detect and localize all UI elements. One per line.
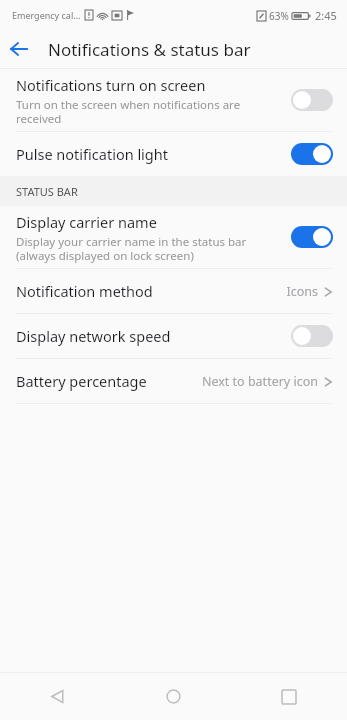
- button[interactable]: Notification method: [0, 269, 347, 313]
- staticText: 2:45: [315, 8, 337, 23]
- staticText: Notification method: [16, 281, 153, 301]
- staticText: Display your carrier name in the status …: [16, 234, 247, 263]
- staticText: Notifications & status bar: [48, 38, 251, 61]
- staticText: STATUS BAR: [16, 184, 78, 199]
- button[interactable]: Display carrier name: [0, 206, 347, 268]
- staticText: Next to battery icon: [201, 373, 318, 390]
- staticText: 63%: [269, 9, 289, 23]
- button[interactable]: Pulse notification light: [0, 132, 347, 176]
- staticText: Battery percentage: [16, 371, 147, 391]
- button[interactable]: Notifications turn on screen: [0, 69, 347, 131]
- staticText: Pulse notification light: [16, 144, 168, 164]
- button[interactable]: Home: [115, 673, 231, 720]
- staticText: Display network speed: [16, 326, 171, 346]
- button[interactable]: Back: [0, 30, 38, 68]
- button[interactable]: Display network speed: [0, 314, 347, 358]
- staticText: Display carrier name: [16, 212, 157, 232]
- staticText: Turn on the screen when notifications ar…: [16, 97, 241, 126]
- button[interactable]: Recent apps: [231, 673, 347, 720]
- staticText: Icons: [286, 283, 318, 300]
- staticText: Notifications turn on screen: [16, 75, 206, 95]
- button[interactable]: Back: [0, 673, 115, 720]
- button[interactable]: Battery percentage: [0, 359, 347, 403]
- staticText: Emergency cal...: [12, 9, 81, 21]
